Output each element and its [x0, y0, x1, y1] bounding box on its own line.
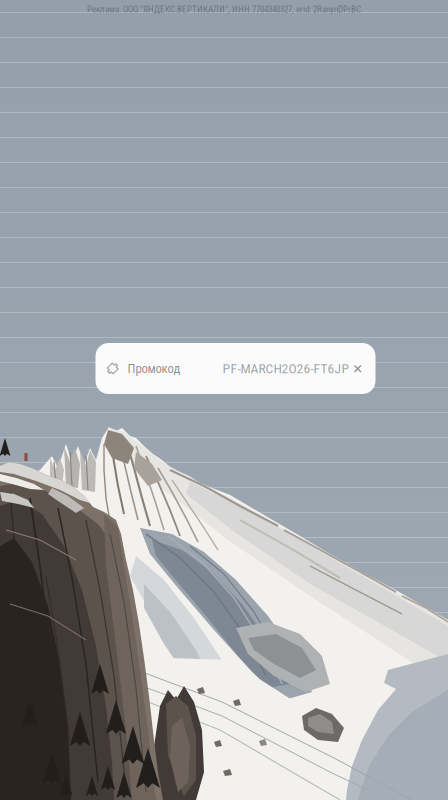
button[interactable]: Промокод	[95, 343, 375, 394]
button[interactable]: Удалить промокод	[349, 358, 370, 379]
staticText: Реклама. ООО "ЯНДЕКС.ВЕРТИКАЛИ", ИНН 770…	[87, 4, 361, 15]
staticText: PF-MARCH2O26-FT6JP	[222, 360, 349, 376]
staticText: Промокод	[127, 361, 180, 376]
